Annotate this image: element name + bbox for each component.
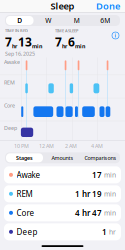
button[interactable]: Core [4,204,121,221]
button[interactable]: Done [91,0,125,14]
staticText: hr [62,43,67,50]
button[interactable]: W [34,16,62,25]
staticText: 6M [100,16,110,25]
staticText: REM [16,188,32,199]
staticText: Deep [16,226,37,237]
staticText: REM [4,79,15,86]
staticText: Stages [16,154,33,161]
staticText: 6 [68,34,75,50]
staticText: min [102,189,116,198]
staticText: 13 [18,34,32,50]
staticText: Done [96,0,120,12]
staticText: Core [4,102,15,109]
button[interactable]: Amounts [44,153,81,162]
staticText: min [102,208,116,217]
staticText: D [17,16,22,25]
staticText: 7 [55,34,62,50]
staticText: min [102,170,116,179]
staticText: Core [16,207,34,218]
staticText: 4 hr 47 [75,207,102,218]
button[interactable]: Deep [4,223,121,240]
staticText: 12 AM [39,142,54,149]
staticText: Awake [16,169,40,180]
button[interactable]: 6M [91,16,119,25]
staticText: 4 AM [91,142,103,149]
staticText: Sleep [50,0,74,12]
staticText: i [114,32,116,39]
staticText: hr [12,43,17,50]
button[interactable]: REM [4,185,121,202]
button[interactable]: Comparisons [82,153,119,162]
staticText: TIME IN BED [5,28,28,33]
staticText: 17 [92,169,102,180]
staticText: Awake [4,58,20,65]
staticText: 2 AM [65,142,77,149]
button[interactable]: About sleep data [112,28,120,39]
button[interactable]: Stages [6,153,43,162]
button[interactable]: M [63,16,90,25]
staticText: 1 [102,226,107,237]
staticText: Comparisons [84,154,116,161]
button[interactable]: Awake [4,166,121,183]
button[interactable]: D [6,16,33,25]
staticText: M [74,16,80,25]
staticText: Amounts [51,154,73,161]
staticText: 7 [5,34,12,50]
staticText: TIME ASLEEP [55,28,78,33]
staticText: Sep 16, 2025 [5,50,35,57]
staticText: min [75,43,85,50]
staticText: W [45,16,51,25]
staticText: 1 hr 19 [75,188,102,199]
staticText: min [32,43,42,50]
staticText: 10 PM [14,142,29,149]
staticText: hr [107,227,116,236]
staticText: Deep [4,124,17,131]
